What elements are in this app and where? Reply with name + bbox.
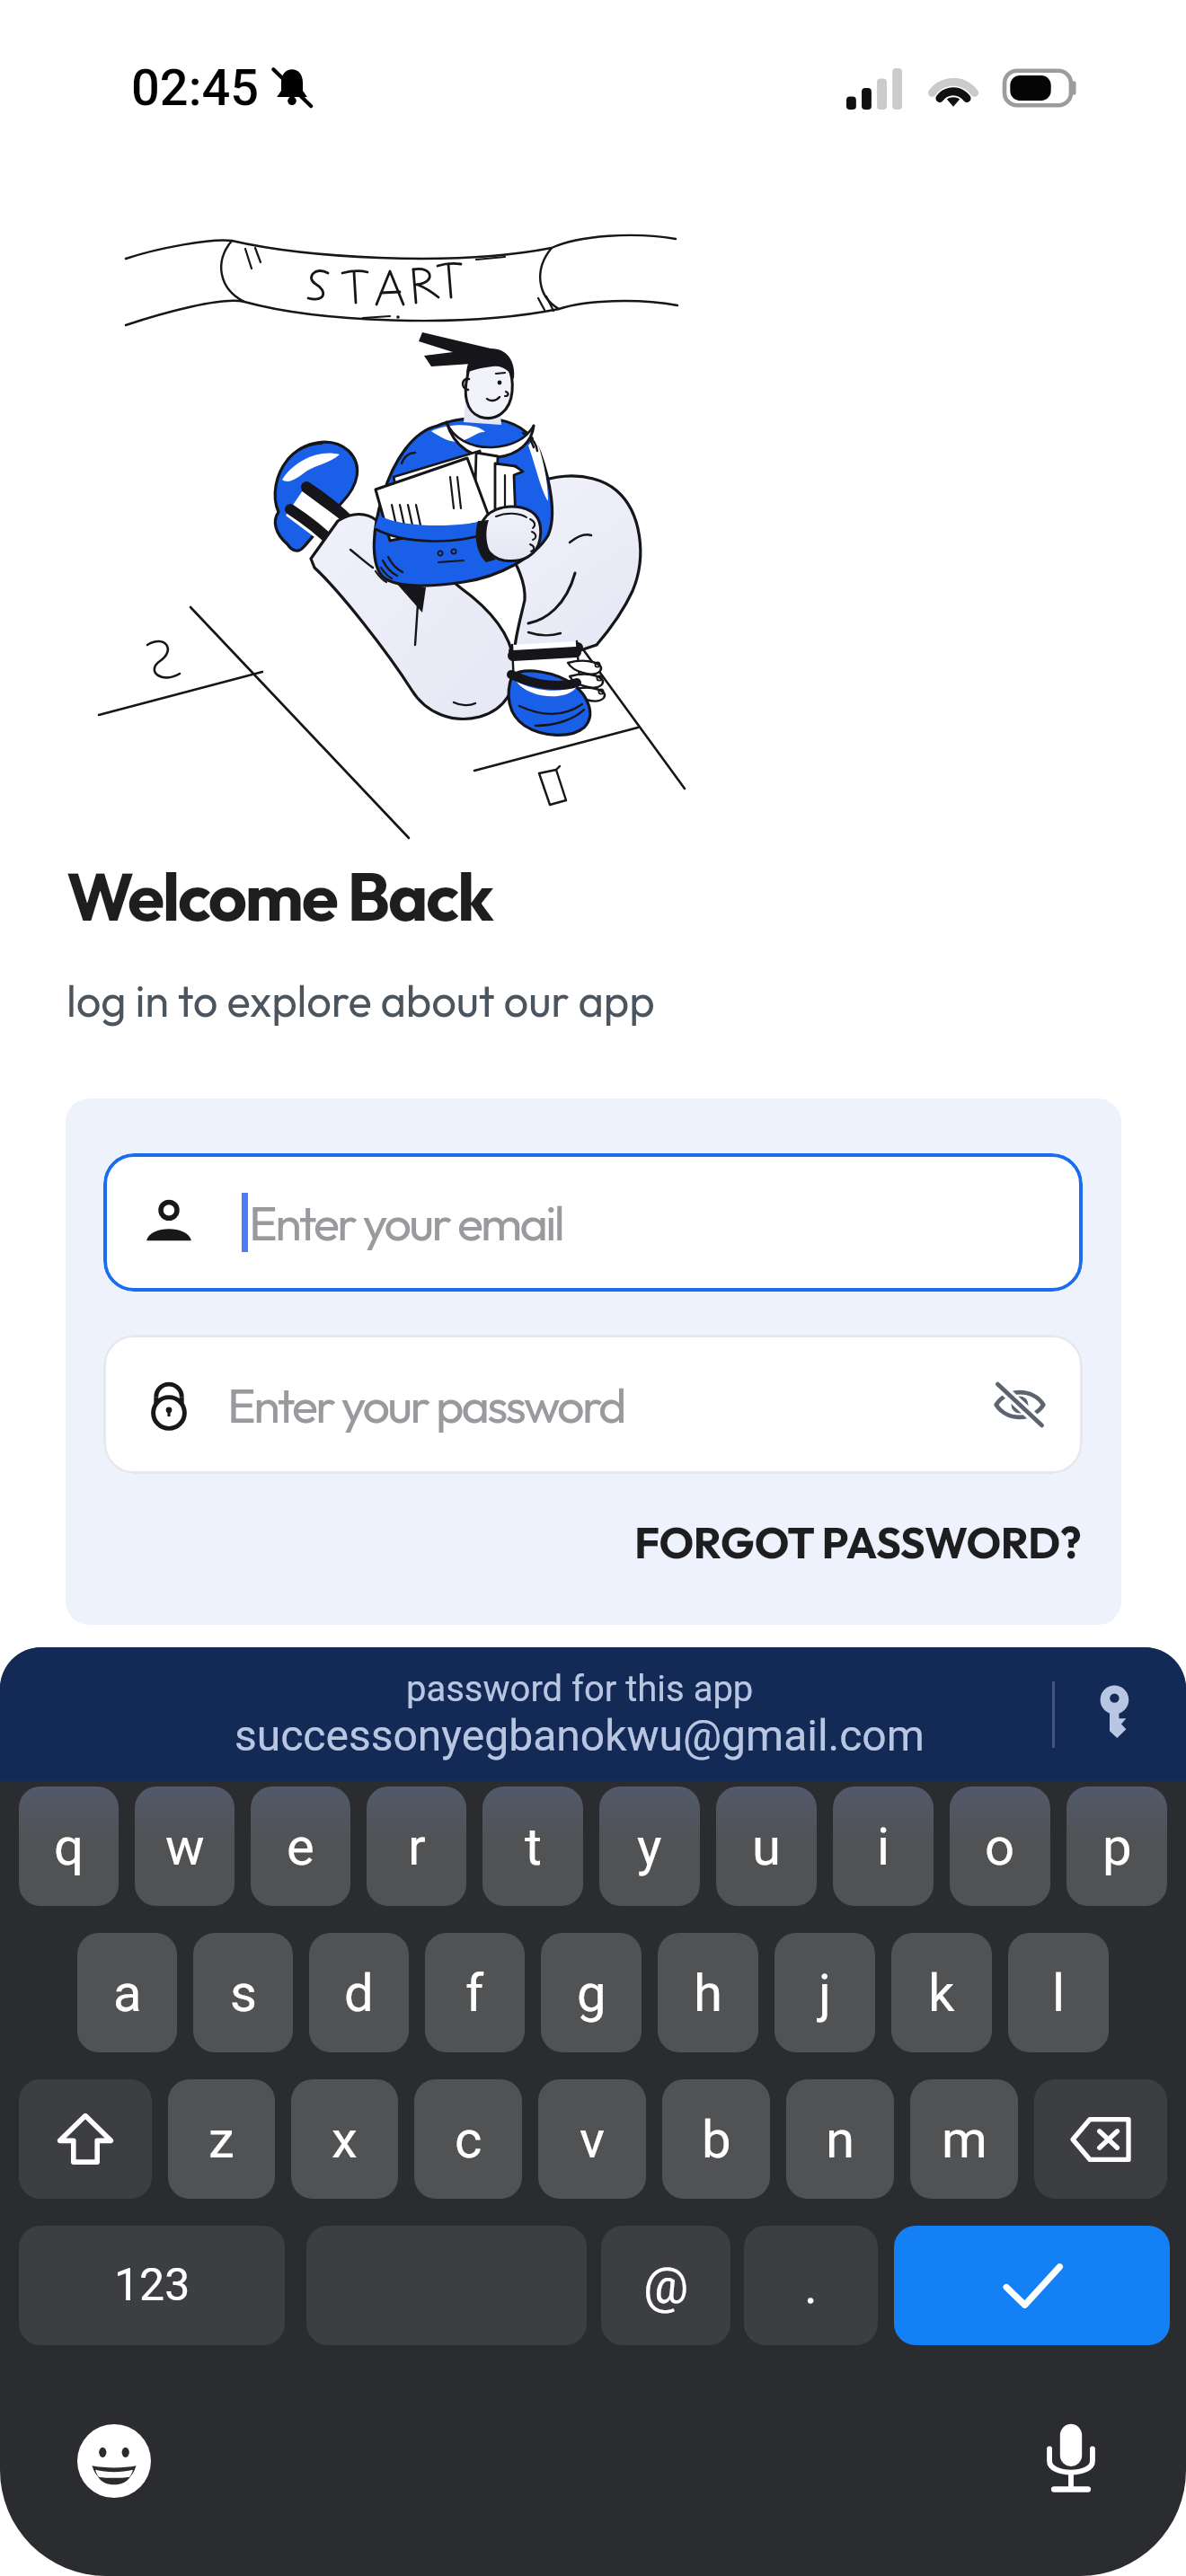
button[interactable]: Enter your email	[103, 1153, 1083, 1292]
staticText: j	[819, 1963, 831, 2024]
staticText: q	[54, 1816, 84, 1877]
staticText: o	[985, 1816, 1015, 1877]
staticText: 02:45	[131, 58, 260, 118]
button[interactable]: m	[910, 2079, 1018, 2199]
staticText: log in to explore about our app	[66, 973, 655, 1028]
button[interactable]: j	[774, 1933, 875, 2052]
staticText: 123	[114, 2259, 190, 2312]
button[interactable]: e	[251, 1786, 350, 1906]
staticText: @	[643, 2256, 689, 2316]
staticText: p	[1102, 1816, 1132, 1877]
button[interactable]: 123	[19, 2226, 285, 2345]
staticText: m	[942, 2109, 987, 2170]
staticText: v	[580, 2109, 606, 2170]
button[interactable]: s	[193, 1933, 293, 2052]
button[interactable]: Password manager	[1085, 1682, 1150, 1747]
staticText: d	[344, 1963, 374, 2024]
staticText: g	[577, 1963, 606, 2024]
staticText: y	[637, 1816, 662, 1877]
staticText: r	[408, 1816, 426, 1877]
staticText: Welcome Back	[66, 853, 492, 939]
staticText: k	[928, 1963, 955, 2024]
button[interactable]: r	[367, 1786, 466, 1906]
button[interactable]: y	[599, 1786, 700, 1906]
button[interactable]: Show password	[995, 1380, 1045, 1430]
staticText: FORGOT PASSWORD?	[634, 1515, 1082, 1569]
button[interactable]: Shift	[19, 2079, 152, 2199]
button[interactable]: h	[658, 1933, 758, 2052]
button[interactable]: u	[716, 1786, 817, 1906]
staticText: password for this app	[406, 1668, 754, 1710]
staticText: a	[113, 1963, 142, 2024]
button[interactable]: v	[538, 2079, 646, 2199]
button[interactable]: t	[482, 1786, 583, 1906]
button[interactable]: g	[541, 1933, 642, 2052]
button[interactable]: k	[891, 1933, 992, 2052]
button[interactable]: i	[833, 1786, 934, 1906]
staticText: Enter your password	[227, 1374, 995, 1435]
button[interactable]: Enter your password	[103, 1335, 1083, 1474]
button[interactable]: a	[77, 1933, 177, 2052]
button[interactable]: f	[425, 1933, 525, 2052]
staticText: u	[752, 1816, 781, 1877]
staticText: .	[804, 2256, 818, 2316]
button[interactable]: o	[950, 1786, 1050, 1906]
button[interactable]: FORGOT PASSWORD?	[629, 1510, 1087, 1575]
button[interactable]: @	[601, 2226, 730, 2345]
button[interactable]: p	[1067, 1786, 1167, 1906]
button[interactable]: Emoji	[77, 2424, 151, 2498]
button[interactable]: z	[168, 2079, 275, 2199]
button[interactable]: Voice input	[1033, 2423, 1109, 2499]
staticText: z	[208, 2109, 235, 2170]
staticText: w	[165, 1816, 205, 1877]
staticText: successonyegbanokwu@gmail.com	[235, 1710, 925, 1760]
staticText: b	[702, 2109, 731, 2170]
button[interactable]: w	[135, 1786, 235, 1906]
button[interactable]: Done	[894, 2226, 1170, 2345]
button[interactable]: x	[291, 2079, 398, 2199]
staticText: x	[332, 2109, 358, 2170]
button[interactable]: n	[786, 2079, 894, 2199]
button[interactable]: q	[19, 1786, 119, 1906]
button[interactable]: b	[662, 2079, 770, 2199]
staticText: t	[525, 1816, 542, 1877]
staticText: e	[287, 1816, 314, 1877]
button[interactable]: l	[1008, 1933, 1109, 2052]
staticText: s	[230, 1963, 257, 2024]
staticText: c	[455, 2109, 482, 2170]
staticText: i	[877, 1816, 890, 1877]
staticText: l	[1052, 1963, 1066, 2024]
staticText: f	[465, 1963, 484, 2024]
staticText: Enter your email	[249, 1192, 563, 1253]
button[interactable]: c	[414, 2079, 522, 2199]
button[interactable]: Backspace	[1034, 2079, 1167, 2199]
button[interactable]: .	[744, 2226, 878, 2345]
staticText: n	[826, 2109, 855, 2170]
staticText: h	[694, 1963, 722, 2024]
button[interactable]: d	[309, 1933, 409, 2052]
